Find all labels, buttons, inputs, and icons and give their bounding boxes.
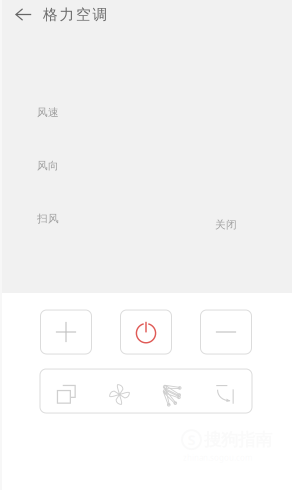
staticText: 调 bbox=[92, 5, 107, 23]
staticText: 空 bbox=[76, 5, 91, 23]
button[interactable]: Swing bbox=[199, 369, 252, 413]
button[interactable]: Increase bbox=[40, 310, 91, 354]
button[interactable]: Wind direction bbox=[146, 369, 199, 413]
button[interactable]: Fan speed bbox=[93, 369, 146, 413]
button[interactable]: Power bbox=[120, 310, 171, 354]
staticText: 格 bbox=[43, 5, 58, 23]
button[interactable]: Back bbox=[0, 0, 43, 29]
button[interactable]: Decrease bbox=[200, 310, 251, 354]
staticText: 力 bbox=[59, 5, 74, 23]
button[interactable]: Mode bbox=[40, 369, 93, 413]
staticText: 风向 bbox=[37, 159, 59, 172]
staticText: 风速 bbox=[37, 106, 59, 119]
staticText: 关闭 bbox=[215, 218, 237, 231]
staticText: 扫风 bbox=[37, 212, 59, 225]
